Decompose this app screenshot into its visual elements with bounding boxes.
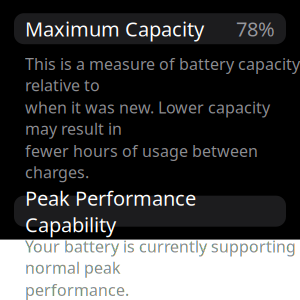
staticText: This is a measure of battery capacity re… <box>25 53 300 96</box>
staticText: Maximum Capacity <box>25 15 204 42</box>
staticText: 78% <box>236 15 275 42</box>
staticText: fewer hours of usage between charges. <box>25 140 258 183</box>
staticText: Your battery is currently supporting nor… <box>25 236 296 278</box>
staticText: Peak Performance Capability <box>25 185 196 238</box>
staticText: performance. <box>25 279 129 300</box>
staticText: when it was new. Lower capacity may resu… <box>25 97 270 139</box>
